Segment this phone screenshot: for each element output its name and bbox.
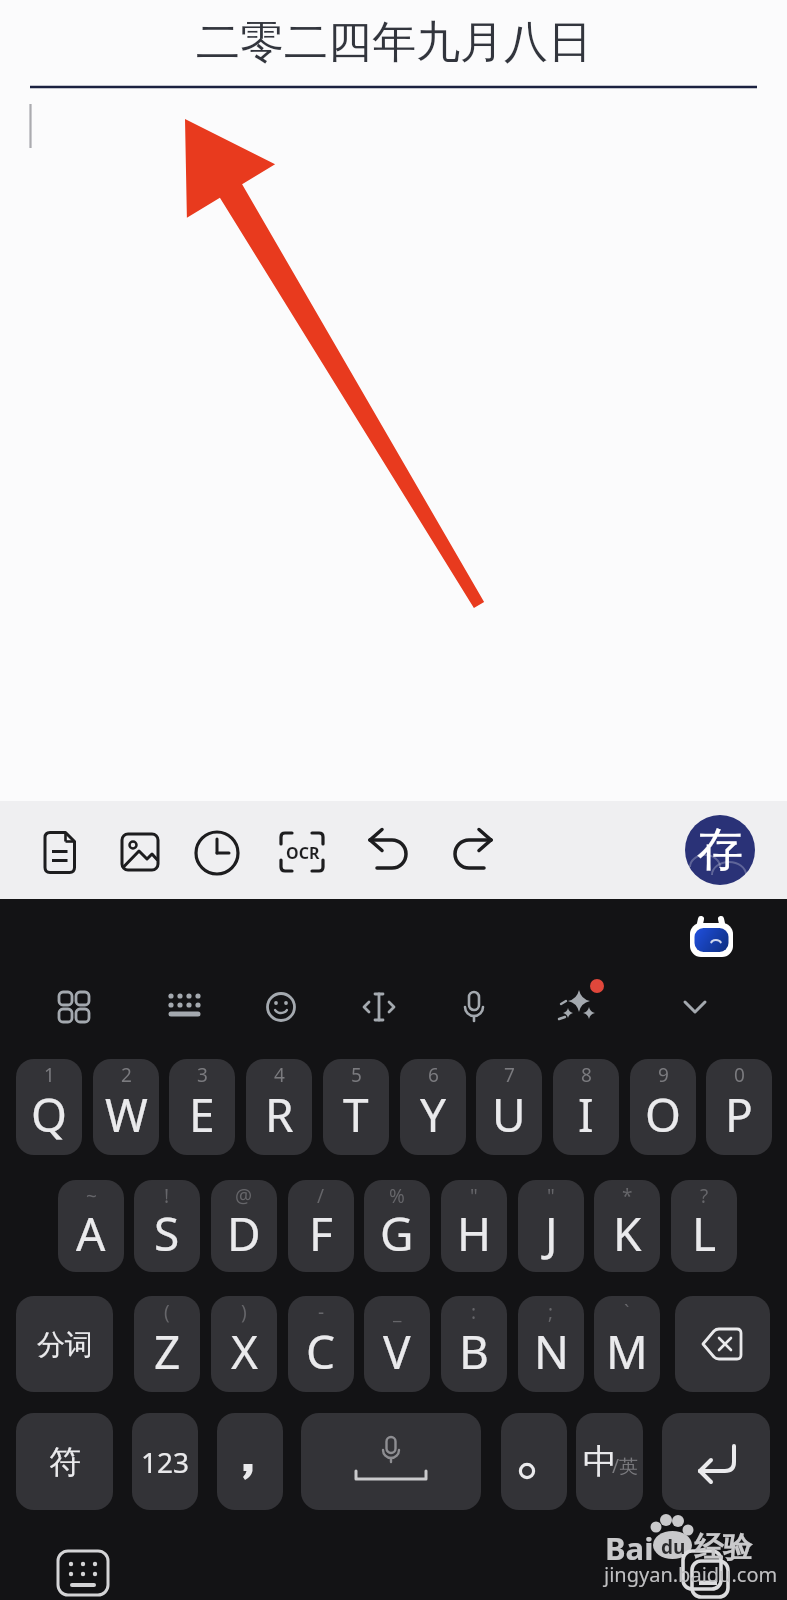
button[interactable]: 9 [630, 1059, 696, 1155]
button[interactable]: 4 [246, 1059, 312, 1155]
staticText: ~ [86, 1183, 97, 1209]
staticText: 6 [428, 1062, 439, 1088]
button[interactable]: 1 [16, 1059, 82, 1155]
button[interactable] [217, 1413, 283, 1510]
staticText: 经验 [694, 1529, 752, 1566]
staticText: /英 [612, 1453, 639, 1479]
button[interactable]: ) [211, 1296, 277, 1392]
button[interactable]: 5 [323, 1059, 389, 1155]
staticText: : [471, 1299, 477, 1325]
staticText: U [492, 1083, 526, 1146]
button[interactable] [33, 826, 85, 878]
staticText: 2 [121, 1062, 132, 1088]
staticText: R [265, 1083, 294, 1146]
staticText: ` [624, 1299, 630, 1325]
staticText: % [389, 1183, 405, 1209]
staticText: V [383, 1320, 411, 1383]
button[interactable]: % [364, 1180, 430, 1272]
staticText: 3 [197, 1062, 208, 1088]
staticText: 存 [697, 821, 743, 879]
button[interactable]: * [594, 1180, 660, 1272]
staticText: Q [31, 1083, 67, 1146]
staticText: G [380, 1202, 414, 1265]
staticText: 符 [49, 1442, 81, 1482]
staticText: P [725, 1083, 753, 1146]
button[interactable] [191, 826, 243, 878]
button[interactable]: - [288, 1296, 354, 1392]
staticText: N [534, 1320, 569, 1383]
staticText: 9 [658, 1062, 669, 1088]
button[interactable] [114, 826, 166, 878]
staticText: E [189, 1083, 215, 1146]
button[interactable]: 中 [576, 1413, 643, 1510]
button[interactable] [669, 981, 721, 1033]
staticText: 7 [504, 1062, 515, 1088]
button[interactable]: 7 [476, 1059, 542, 1155]
staticText: D [227, 1202, 261, 1265]
button[interactable] [255, 981, 307, 1033]
staticText: / [317, 1183, 325, 1209]
staticText: Y [420, 1083, 447, 1146]
button[interactable]: 存 [685, 815, 755, 885]
staticText: du [661, 1534, 686, 1560]
staticText: " [547, 1183, 555, 1209]
button[interactable]: ? [671, 1180, 737, 1272]
button[interactable]: 8 [553, 1059, 619, 1155]
button[interactable] [501, 1413, 567, 1510]
button[interactable]: ( [134, 1296, 200, 1392]
button[interactable] [675, 1296, 770, 1392]
button[interactable]: 分词 [16, 1296, 113, 1392]
staticText: A [76, 1202, 106, 1265]
button[interactable]: ` [594, 1296, 660, 1392]
button[interactable]: 2 [93, 1059, 159, 1155]
staticText: 123 [141, 1443, 190, 1481]
button[interactable]: : [441, 1296, 507, 1392]
staticText: ? [700, 1183, 709, 1209]
button[interactable] [362, 826, 414, 878]
button[interactable] [448, 981, 500, 1033]
button[interactable] [549, 981, 601, 1033]
staticText: _ [393, 1299, 402, 1325]
button[interactable] [662, 1413, 770, 1510]
staticText: ) [241, 1299, 247, 1325]
staticText: B [459, 1320, 489, 1383]
staticText: J [545, 1202, 558, 1265]
button[interactable] [56, 1548, 110, 1598]
button[interactable]: 0 [706, 1059, 772, 1155]
staticText: 分词 [37, 1327, 93, 1362]
button[interactable]: / [288, 1180, 354, 1272]
staticText: - [318, 1299, 325, 1325]
button[interactable]: 符 [16, 1413, 113, 1510]
staticText: 1 [44, 1062, 55, 1088]
staticText: X [231, 1320, 258, 1383]
button[interactable] [48, 981, 100, 1033]
button[interactable] [276, 826, 328, 878]
staticText: * [622, 1183, 633, 1209]
staticText: 8 [581, 1062, 592, 1088]
staticText: C [306, 1320, 336, 1383]
button[interactable]: _ [364, 1296, 430, 1392]
button[interactable]: 123 [132, 1413, 198, 1510]
staticText: Z [154, 1320, 181, 1383]
staticText: ! [164, 1183, 170, 1209]
button[interactable] [447, 826, 499, 878]
staticText: H [457, 1202, 492, 1265]
button[interactable]: 6 [400, 1059, 466, 1155]
button[interactable] [353, 981, 405, 1033]
button[interactable] [684, 912, 736, 962]
button[interactable]: 3 [169, 1059, 235, 1155]
button[interactable]: ! [134, 1180, 200, 1272]
button[interactable]: ~ [58, 1180, 124, 1272]
button[interactable] [301, 1413, 481, 1510]
staticText: L [692, 1202, 717, 1265]
staticText: ( [164, 1299, 170, 1325]
staticText: OCR [286, 842, 320, 864]
button[interactable] [158, 981, 210, 1033]
button[interactable]: " [518, 1180, 584, 1272]
button[interactable]: @ [211, 1180, 277, 1272]
button[interactable]: ; [518, 1296, 584, 1392]
staticText: @ [235, 1183, 253, 1209]
staticText: ; [548, 1299, 554, 1325]
button[interactable]: " [441, 1180, 507, 1272]
staticText: I [578, 1083, 594, 1146]
